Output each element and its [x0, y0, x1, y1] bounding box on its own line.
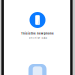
staticText: This is the new phone	[21, 32, 54, 35]
staticText: Receive data	[28, 36, 46, 40]
